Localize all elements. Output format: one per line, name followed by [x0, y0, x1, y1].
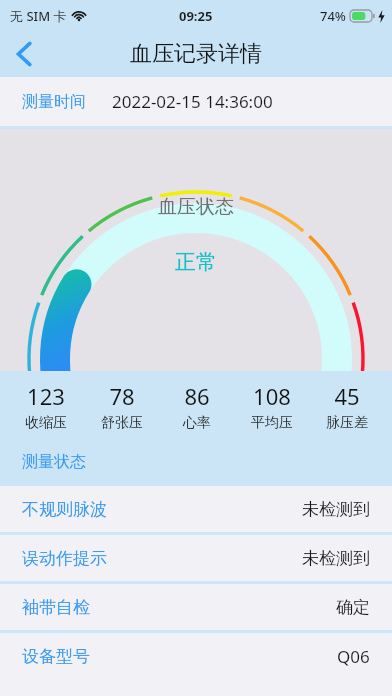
staticText: 平均压 [251, 414, 293, 432]
button[interactable]: 测量状态 [0, 441, 392, 483]
button[interactable]: 袖带自检 [0, 584, 392, 630]
button[interactable]: Back [0, 31, 48, 77]
staticText: 不规则脉波 [22, 499, 107, 520]
staticText: 2022-02-15 14:36:00 [112, 90, 273, 113]
staticText: 未检测到 [302, 499, 370, 520]
staticText: 测量时间 [22, 92, 86, 112]
staticText: 未检测到 [302, 548, 370, 569]
staticText: 无 SIM 卡 [10, 7, 67, 25]
button[interactable]: 测量时间 [0, 77, 392, 126]
staticText: 收缩压 [25, 414, 67, 432]
staticText: 心率 [183, 414, 211, 432]
staticText: 108 [253, 381, 291, 411]
staticText: 45 [334, 381, 360, 411]
staticText: 袖带自检 [22, 597, 90, 618]
staticText: Q06 [337, 645, 370, 668]
staticText: 设备型号 [22, 646, 90, 667]
staticText: 正常 [175, 249, 217, 275]
staticText: 血压状态 [158, 195, 234, 219]
staticText: 123 [27, 381, 65, 411]
staticText: 血压记录详情 [130, 40, 262, 68]
staticText: 78 [109, 381, 135, 411]
staticText: 舒张压 [101, 414, 143, 432]
staticText: 09:25 [179, 7, 213, 25]
staticText: 74% [320, 7, 346, 25]
button[interactable]: 设备型号 [0, 633, 392, 679]
staticText: 86 [184, 381, 210, 411]
button[interactable]: 不规则脉波 [0, 486, 392, 532]
staticText: 误动作提示 [22, 548, 107, 569]
staticText: 脉压差 [326, 414, 368, 432]
staticText: 确定 [336, 597, 370, 618]
button[interactable]: 误动作提示 [0, 535, 392, 581]
staticText: 测量状态 [22, 452, 86, 472]
